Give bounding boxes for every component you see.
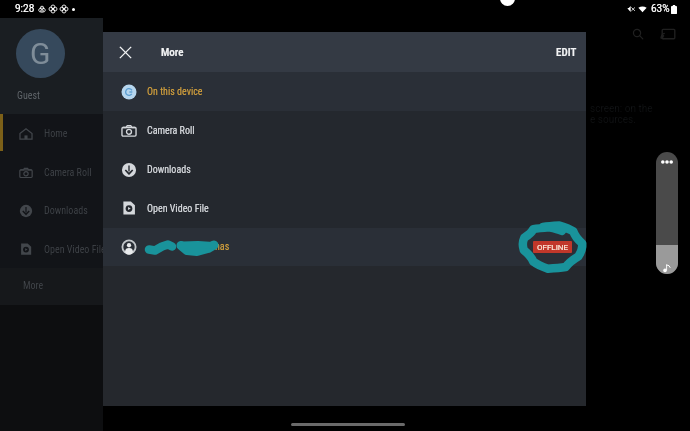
button[interactable]: Downloads	[103, 150, 586, 189]
button[interactable]: OFFLINE	[533, 241, 572, 253]
staticText: More	[161, 46, 184, 59]
staticText: Downloads	[44, 205, 88, 217]
staticText: OFFLINE	[537, 243, 569, 252]
staticText: e sources.	[590, 114, 636, 126]
staticText: 63%	[651, 3, 670, 15]
staticText: Open Video File	[147, 203, 209, 215]
button[interactable]: Home	[0, 114, 103, 153]
staticText: Camera Roll	[44, 167, 92, 179]
button[interactable]: Cast	[656, 22, 680, 46]
button[interactable]: Open Video File	[103, 189, 586, 228]
staticText: Open Video File	[44, 244, 103, 256]
button[interactable]: Profile	[16, 29, 65, 78]
button[interactable]: Camera Roll	[103, 111, 586, 150]
staticText: EDIT	[556, 46, 577, 59]
button[interactable]: EDIT	[549, 40, 584, 65]
staticText: Guest	[17, 90, 40, 102]
button[interactable]: nas	[103, 228, 586, 266]
staticText: More	[23, 280, 44, 292]
staticText: Camera Roll	[147, 125, 195, 137]
staticText: nas	[215, 241, 230, 253]
button[interactable]: Search	[626, 22, 650, 46]
button[interactable]: On this device	[103, 72, 586, 111]
button[interactable]: Camera Roll	[0, 153, 103, 192]
button[interactable]: Volume	[656, 152, 678, 274]
staticText: screen: on the	[590, 103, 653, 115]
staticText: Downloads	[147, 164, 191, 176]
staticText: On this device	[147, 86, 203, 98]
button[interactable]: Close	[113, 40, 137, 64]
staticText: 9:28	[15, 3, 35, 15]
button[interactable]: Downloads	[0, 191, 103, 230]
staticText: Home	[44, 128, 68, 140]
button[interactable]: Open Video File	[0, 230, 103, 268]
button[interactable]: More	[0, 268, 103, 305]
staticText: G	[30, 36, 51, 71]
